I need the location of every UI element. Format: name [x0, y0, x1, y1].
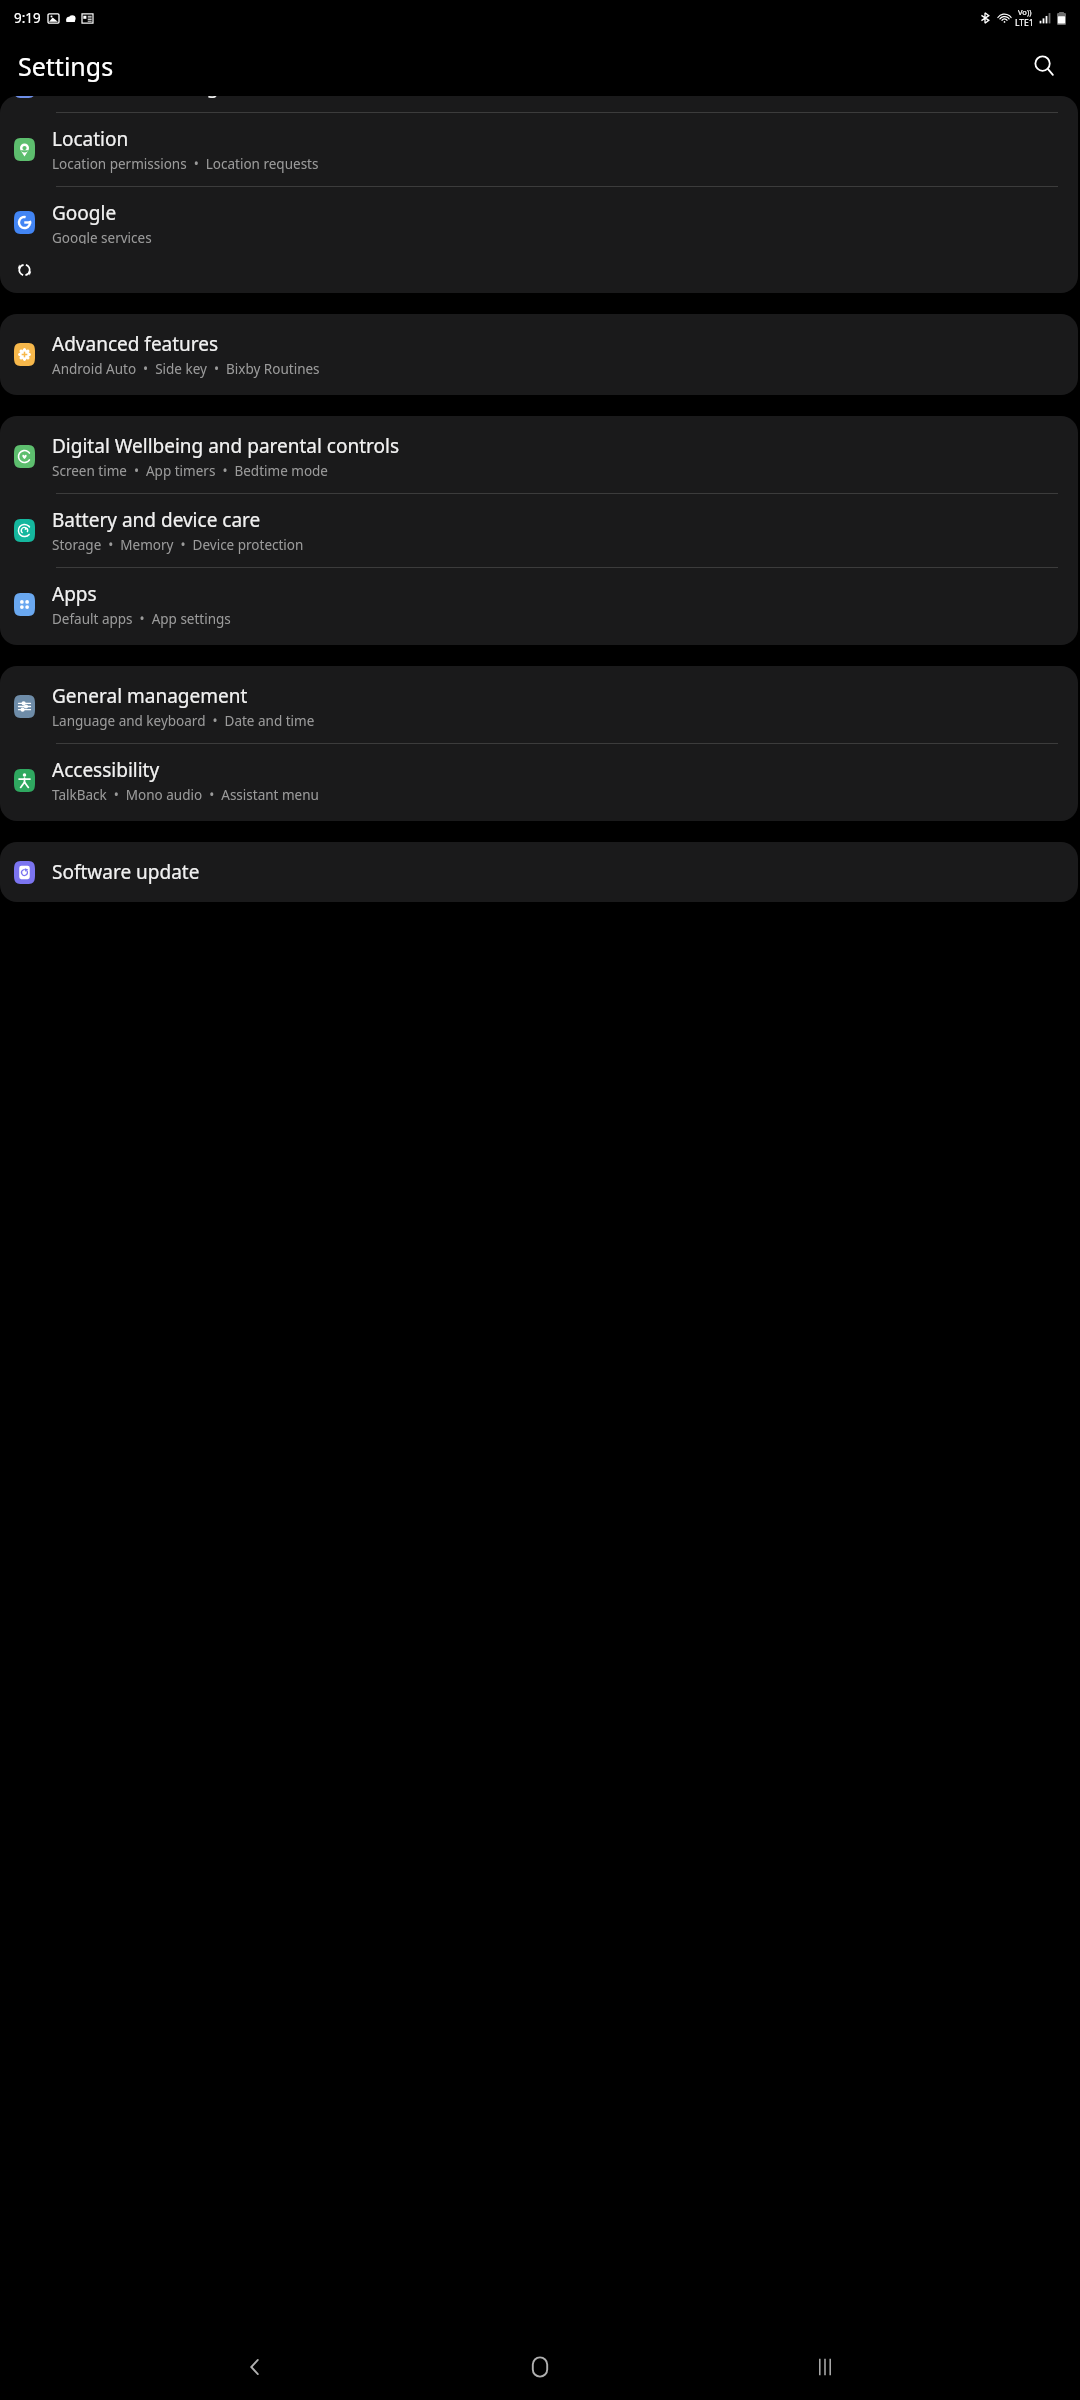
button[interactable]: Google — [0, 187, 1078, 257]
staticText: Storage • Memory • Device protection — [52, 536, 304, 554]
staticText: Software update — [52, 859, 200, 885]
staticText: Vo)) — [1018, 7, 1032, 17]
button[interactable]: Permission manager — [0, 96, 1078, 112]
button[interactable]: Search — [1022, 44, 1066, 88]
staticText: 9:19 — [14, 9, 41, 27]
staticText: Apps — [52, 581, 97, 607]
staticText: LTE1 — [1015, 17, 1034, 29]
button[interactable]: Back — [225, 2337, 285, 2397]
staticText: Digital Wellbeing and parental controls — [52, 433, 400, 459]
staticText: Google services — [52, 229, 152, 244]
button[interactable]: Software update — [0, 842, 1078, 902]
other: Battery and device care — [14, 519, 35, 542]
staticText: Screen time • App timers • Bedtime mode — [52, 462, 328, 480]
button[interactable]: Accessibility — [0, 744, 1078, 817]
staticText: Accessibility — [52, 757, 160, 783]
button[interactable]: Battery and device care — [0, 494, 1078, 567]
staticText: General management — [52, 683, 248, 709]
button[interactable]: Recents — [795, 2337, 855, 2397]
staticText: Location permissions • Location requests — [52, 155, 319, 173]
other: Digital Wellbeing — [14, 445, 35, 468]
staticText: Default apps • App settings — [52, 610, 231, 628]
staticText: Battery and device care — [52, 507, 261, 533]
staticText: Location — [52, 126, 129, 152]
staticText: Language and keyboard • Date and time — [52, 712, 315, 730]
staticText: Permission manager — [52, 96, 238, 99]
other: Accessibility — [14, 769, 35, 792]
other: Software update — [14, 861, 35, 884]
other: Advanced features — [14, 343, 35, 366]
other: Location — [14, 138, 35, 161]
button[interactable]: Location — [0, 113, 1078, 186]
button[interactable]: General management — [0, 670, 1078, 743]
other: Apps — [14, 593, 35, 616]
staticText: Advanced features — [52, 331, 219, 357]
staticText: Settings — [18, 49, 114, 83]
other: Permission manager — [14, 96, 35, 98]
other: General management — [14, 695, 35, 718]
button[interactable]: Digital Wellbeing — [0, 420, 1078, 493]
other: Google — [14, 211, 35, 234]
button[interactable]: Apps — [0, 568, 1078, 641]
staticText: TalkBack • Mono audio • Assistant menu — [52, 786, 319, 804]
button[interactable]: Home — [510, 2337, 570, 2397]
button[interactable]: Advanced features — [0, 318, 1078, 391]
staticText: Android Auto • Side key • Bixby Routines — [52, 360, 320, 378]
staticText: Google — [52, 200, 117, 226]
